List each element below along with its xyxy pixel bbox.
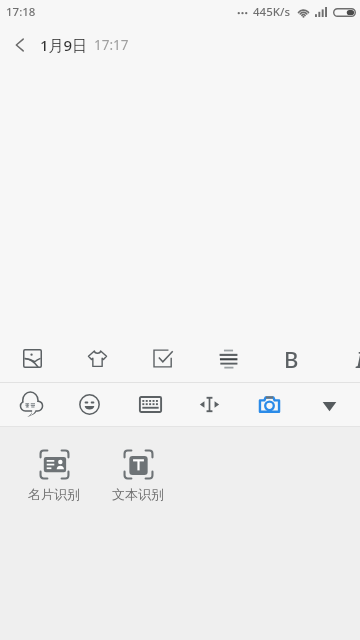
button[interactable]: B <box>275 335 307 382</box>
button[interactable]: Align <box>205 335 252 382</box>
button[interactable]: Insert image <box>9 335 56 382</box>
staticText: 名片识别 <box>28 486 80 502</box>
button[interactable]: Back <box>0 24 40 66</box>
button[interactable]: Voice input <box>6 383 56 426</box>
staticText: 1月9日 <box>40 35 88 55</box>
button[interactable]: Checklist <box>140 335 187 382</box>
button[interactable]: Move cursor <box>184 383 234 426</box>
button[interactable]: 名片识别 <box>12 449 96 502</box>
button[interactable]: I <box>344 335 360 382</box>
staticText: I <box>356 344 360 374</box>
button[interactable]: 文本识别 <box>96 449 180 502</box>
staticText: 17:17 <box>94 36 129 54</box>
staticText: 17:18 <box>6 4 36 20</box>
staticText: 445K/s <box>253 4 291 20</box>
button[interactable]: Theme <box>74 335 121 382</box>
staticText: 文本识别 <box>112 486 164 502</box>
button[interactable]: Keyboard <box>125 383 175 426</box>
button[interactable]: Camera <box>244 383 294 426</box>
staticText: B <box>284 344 299 374</box>
button[interactable]: Emoji <box>64 383 114 426</box>
button[interactable]: Collapse <box>304 383 354 426</box>
